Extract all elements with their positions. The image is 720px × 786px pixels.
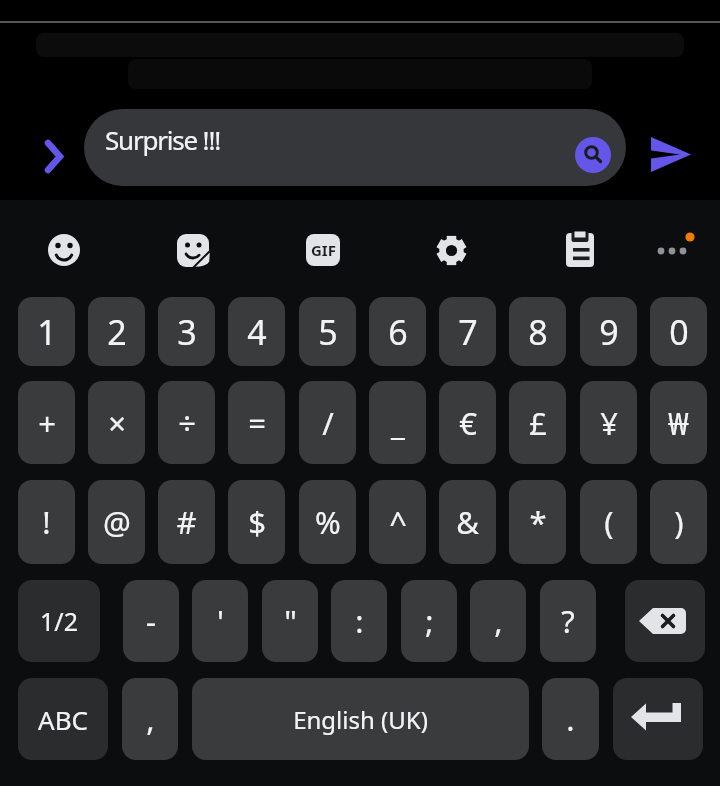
button[interactable]: ( bbox=[580, 480, 637, 564]
staticText: 5 bbox=[318, 309, 338, 355]
button[interactable] bbox=[645, 131, 697, 179]
button[interactable]: - bbox=[123, 580, 179, 662]
staticText: ^ bbox=[389, 501, 407, 543]
staticText: , bbox=[494, 600, 503, 642]
staticText: $ bbox=[248, 501, 266, 543]
button[interactable] bbox=[40, 226, 88, 274]
staticText: 1 bbox=[37, 309, 57, 355]
staticText: English (UK) bbox=[293, 703, 428, 736]
staticText: 6 bbox=[388, 309, 408, 355]
button[interactable]: @ bbox=[88, 480, 145, 564]
staticText: = bbox=[248, 402, 266, 444]
staticText: ; bbox=[425, 600, 434, 642]
staticText: . bbox=[566, 698, 575, 740]
staticText: ! bbox=[42, 501, 51, 543]
button[interactable]: ) bbox=[650, 480, 707, 564]
button[interactable]: 8 bbox=[509, 297, 566, 366]
staticText: ¥ bbox=[600, 402, 618, 444]
staticText: 8 bbox=[528, 309, 548, 355]
button[interactable]: € bbox=[439, 381, 496, 464]
staticText: ) bbox=[674, 501, 684, 543]
button[interactable]: 4 bbox=[228, 297, 285, 366]
staticText: 4 bbox=[247, 309, 267, 355]
button[interactable] bbox=[556, 225, 604, 273]
staticText: 0 bbox=[669, 309, 689, 355]
button[interactable]: . bbox=[542, 678, 599, 760]
button[interactable]: ! bbox=[18, 480, 75, 564]
button[interactable]: % bbox=[299, 480, 356, 564]
button[interactable]: ' bbox=[192, 580, 248, 662]
staticText: " bbox=[284, 600, 297, 642]
staticText: 2 bbox=[107, 309, 127, 355]
staticText: € bbox=[459, 402, 477, 444]
button[interactable]: * bbox=[509, 480, 566, 564]
button[interactable]: # bbox=[158, 480, 215, 564]
staticText: ÷ bbox=[178, 402, 196, 444]
button[interactable]: _ bbox=[369, 381, 426, 464]
staticText: : bbox=[355, 600, 364, 642]
button[interactable]: = bbox=[228, 381, 285, 464]
button[interactable]: , bbox=[122, 678, 178, 760]
staticText: _ bbox=[391, 402, 405, 444]
button[interactable]: 9 bbox=[580, 297, 637, 366]
staticText: & bbox=[456, 501, 479, 543]
button[interactable]: $ bbox=[228, 480, 285, 564]
staticText: 9 bbox=[599, 309, 619, 355]
button[interactable]: 1/2 bbox=[18, 580, 100, 662]
button[interactable]: ₩ bbox=[650, 381, 707, 464]
button[interactable]: + bbox=[18, 381, 75, 464]
button[interactable]: 7 bbox=[439, 297, 496, 366]
button[interactable]: 6 bbox=[369, 297, 426, 366]
staticText: GIF bbox=[311, 240, 336, 260]
staticText: - bbox=[146, 600, 156, 642]
button[interactable] bbox=[575, 137, 611, 173]
button[interactable]: ABC bbox=[18, 678, 108, 760]
staticText: ₩ bbox=[668, 402, 689, 444]
button[interactable]: 3 bbox=[158, 297, 215, 366]
button[interactable]: / bbox=[299, 381, 356, 464]
staticText: 1/2 bbox=[40, 604, 78, 638]
button[interactable]: English (UK) bbox=[192, 678, 529, 760]
button[interactable]: Surprise !!! bbox=[84, 109, 626, 186]
staticText: * bbox=[529, 501, 547, 543]
staticText: / bbox=[322, 402, 334, 444]
button[interactable]: 5 bbox=[299, 297, 356, 366]
button[interactable]: & bbox=[439, 480, 496, 564]
button[interactable] bbox=[169, 226, 217, 274]
button[interactable] bbox=[428, 227, 476, 275]
staticText: Surprise !!! bbox=[105, 122, 220, 157]
staticText: + bbox=[38, 402, 56, 444]
button[interactable]: " bbox=[262, 580, 318, 662]
staticText: £ bbox=[529, 402, 547, 444]
button[interactable]: £ bbox=[509, 381, 566, 464]
staticText: # bbox=[176, 501, 197, 543]
button[interactable]: × bbox=[88, 381, 145, 464]
button[interactable] bbox=[38, 138, 72, 176]
button[interactable]: , bbox=[470, 580, 526, 662]
button[interactable]: ? bbox=[540, 580, 596, 662]
button[interactable]: ¥ bbox=[580, 381, 637, 464]
button[interactable]: ; bbox=[401, 580, 457, 662]
button[interactable] bbox=[613, 678, 703, 760]
staticText: % bbox=[315, 501, 341, 543]
button[interactable]: GIF bbox=[299, 226, 347, 274]
staticText: ? bbox=[561, 600, 575, 642]
button[interactable]: 2 bbox=[88, 297, 145, 366]
staticText: × bbox=[108, 402, 126, 444]
staticText: , bbox=[146, 698, 155, 740]
button[interactable]: : bbox=[331, 580, 387, 662]
button[interactable] bbox=[648, 226, 700, 278]
button[interactable]: ^ bbox=[369, 480, 426, 564]
staticText: ( bbox=[604, 501, 614, 543]
staticText: 7 bbox=[458, 309, 478, 355]
staticText: @ bbox=[103, 501, 131, 543]
button[interactable] bbox=[625, 580, 705, 662]
staticText: 3 bbox=[177, 309, 197, 355]
button[interactable]: 0 bbox=[650, 297, 707, 366]
staticText: ' bbox=[217, 600, 224, 642]
button[interactable]: ÷ bbox=[158, 381, 215, 464]
staticText: ABC bbox=[38, 702, 88, 737]
button[interactable]: 1 bbox=[18, 297, 75, 366]
